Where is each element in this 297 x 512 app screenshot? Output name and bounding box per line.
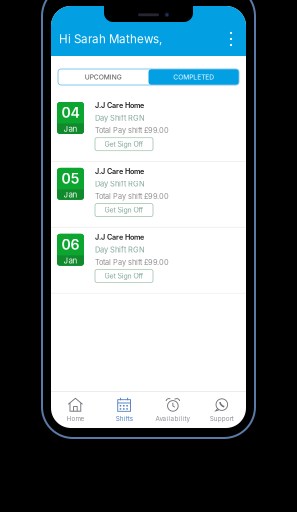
staticText: J.J Care Home	[95, 167, 144, 176]
button[interactable]: Get Sign Off	[95, 204, 153, 217]
staticText: Get Sign Off	[104, 206, 143, 214]
staticText: Home	[66, 415, 84, 422]
staticText: 05	[61, 170, 79, 187]
button[interactable]: Get Sign Off	[95, 138, 153, 151]
staticText: J.J Care Home	[95, 101, 144, 110]
staticText: Total Pay shift £99.00	[95, 192, 169, 201]
staticText: Total Pay shift £99.00	[95, 258, 169, 267]
staticText: Jan	[63, 190, 77, 199]
staticText: 04	[61, 104, 79, 121]
button[interactable]: UPCOMING	[58, 69, 148, 85]
staticText: Support	[210, 415, 234, 422]
staticText: Availability	[155, 415, 190, 422]
staticText: Total Pay shift £99.00	[95, 126, 169, 135]
button[interactable]: Availability	[148, 397, 197, 422]
staticText: Jan	[63, 124, 77, 134]
staticText: Get Sign Off	[104, 272, 143, 280]
staticText: J.J Care Home	[95, 233, 144, 242]
button[interactable]: Support	[197, 397, 246, 422]
staticText: Jan	[63, 256, 77, 265]
button[interactable]: Shifts	[100, 397, 149, 422]
staticText: COMPLETED	[173, 73, 214, 81]
staticText: Day Shift RGN	[95, 179, 145, 188]
staticText: Day Shift RGN	[95, 113, 145, 122]
staticText: Hi Sarah Mathews,	[59, 32, 162, 46]
button[interactable]: COMPLETED	[148, 69, 239, 85]
staticText: Shifts	[116, 415, 133, 422]
staticText: 06	[61, 236, 79, 253]
button[interactable]: More options	[224, 28, 238, 50]
button[interactable]: Get Sign Off	[95, 269, 153, 282]
staticText: Day Shift RGN	[95, 245, 145, 254]
staticText: UPCOMING	[85, 73, 122, 81]
staticText: Get Sign Off	[104, 140, 143, 148]
button[interactable]: Home	[51, 397, 100, 422]
